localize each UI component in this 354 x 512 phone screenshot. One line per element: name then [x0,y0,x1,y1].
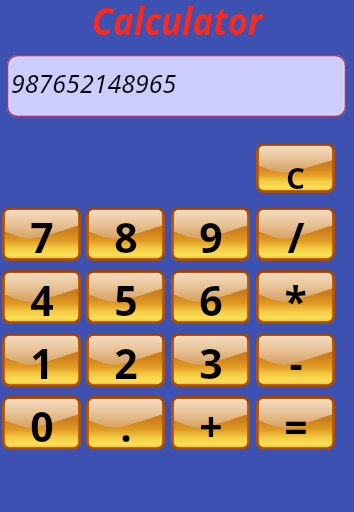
staticText: 5 [114,272,138,324]
staticText: 1 [30,335,54,387]
button[interactable]: 4 [2,270,81,324]
button[interactable]: 9 [171,207,250,261]
staticText: 987652148965 [11,66,177,100]
button[interactable]: 5 [86,270,165,324]
button[interactable]: . [86,396,165,450]
staticText: 7 [30,209,54,261]
staticText: - [289,335,303,387]
button[interactable]: C [256,143,335,193]
button[interactable]: * [256,270,335,324]
button[interactable]: = [256,396,335,450]
staticText: 9 [199,209,223,261]
staticText: 8 [114,209,138,261]
staticText: C [286,158,305,193]
button[interactable]: - [256,333,335,387]
staticText: Calculator [92,0,263,46]
staticText: 3 [199,335,223,387]
staticText: 6 [199,272,223,324]
button[interactable]: 1 [2,333,81,387]
button[interactable]: 6 [171,270,250,324]
button[interactable]: 7 [2,207,81,261]
staticText: 2 [114,335,138,387]
staticText: * [284,272,307,324]
button[interactable]: / [256,207,335,261]
staticText: . [120,398,132,450]
staticText: 4 [30,272,54,324]
button[interactable]: 3 [171,333,250,387]
staticText: + [199,398,223,450]
button[interactable]: 2 [86,333,165,387]
staticText: = [284,398,308,450]
button[interactable]: 8 [86,207,165,261]
button[interactable]: 0 [2,396,81,450]
button[interactable]: + [171,396,250,450]
staticText: 0 [30,398,54,450]
staticText: / [287,209,305,261]
